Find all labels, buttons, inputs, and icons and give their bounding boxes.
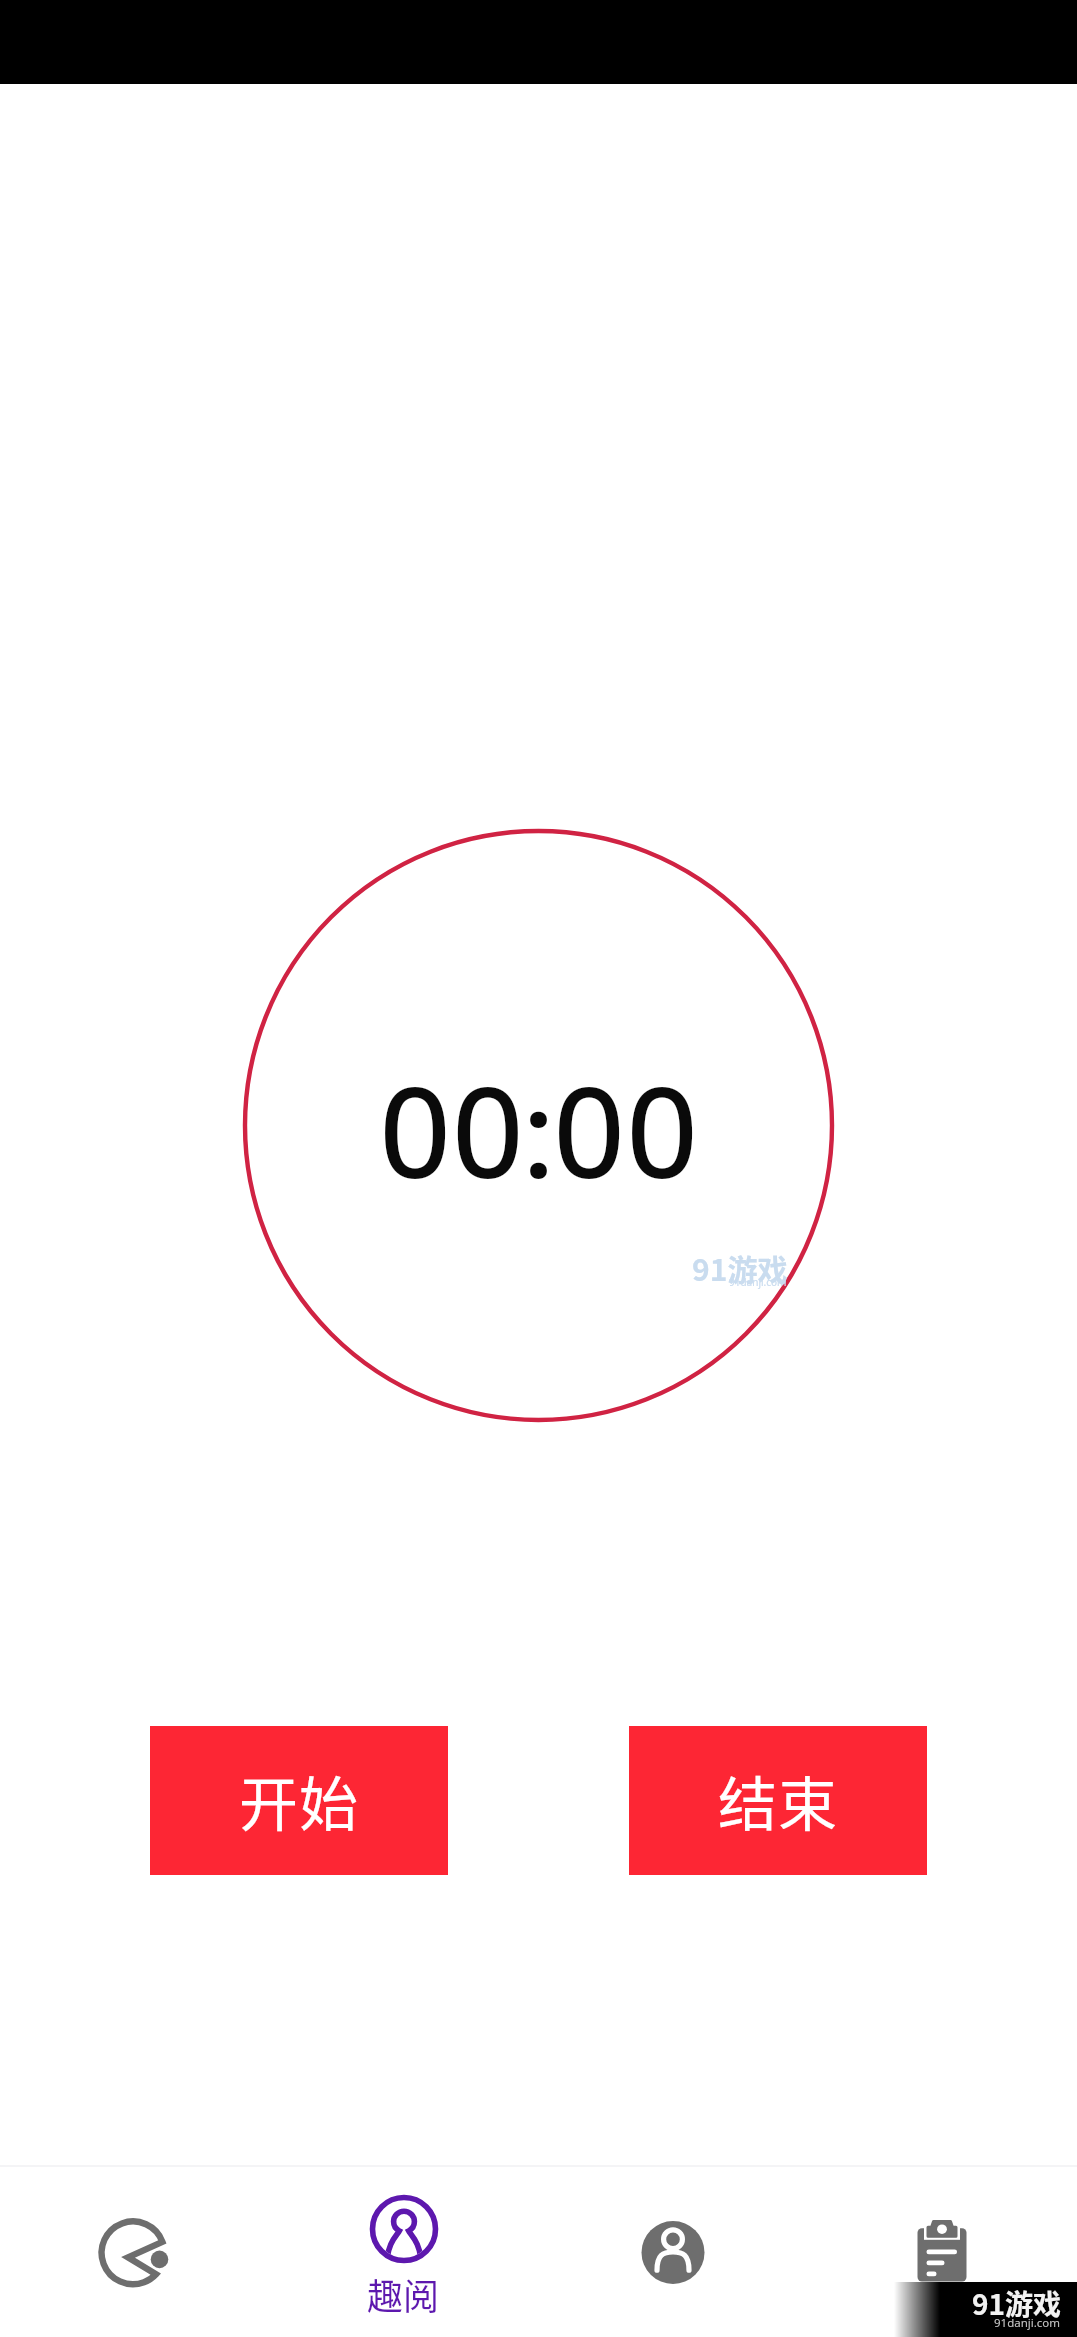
staticText: 结束 (718, 1758, 839, 1843)
staticText: 91游戏 (972, 2283, 1062, 2324)
staticText: 开始 (239, 1758, 360, 1843)
button[interactable]: Discover (0, 2165, 269, 2337)
button[interactable]: 开始 (150, 1726, 448, 1875)
button[interactable]: 趣阅 (269, 2165, 538, 2337)
staticText: 91danji.com (729, 1275, 787, 1289)
button[interactable]: 结束 (629, 1726, 927, 1875)
staticText: 91游戏 (692, 1246, 788, 1289)
button[interactable]: Profile (538, 2165, 807, 2337)
staticText: 00:00 (379, 1053, 699, 1204)
button[interactable]: Tasks (807, 2165, 1076, 2337)
staticText: 91danji.com (994, 2315, 1061, 2331)
staticText: 趣阅 (367, 2268, 440, 2318)
